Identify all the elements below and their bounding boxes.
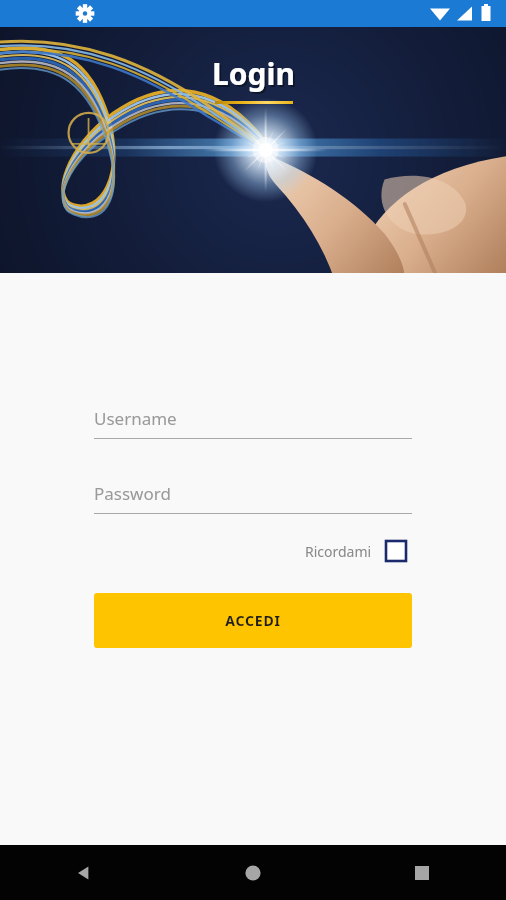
other: Ricordami checkbox [386, 541, 406, 561]
button[interactable]: Back [0, 845, 168, 900]
staticText: Username [94, 407, 177, 430]
staticText: ACCEDI [225, 611, 281, 630]
staticText: Login [214, 55, 297, 96]
button[interactable]: Ricordami [305, 537, 412, 565]
button[interactable]: Username [94, 407, 412, 439]
staticText: Login [212, 53, 295, 94]
button[interactable]: Recent apps [337, 845, 506, 900]
staticText: Password [94, 482, 171, 505]
button[interactable]: Password [94, 482, 412, 514]
staticText: Ricordami [305, 542, 372, 561]
button[interactable]: ACCEDI [94, 593, 412, 648]
button[interactable]: Home [168, 845, 337, 900]
